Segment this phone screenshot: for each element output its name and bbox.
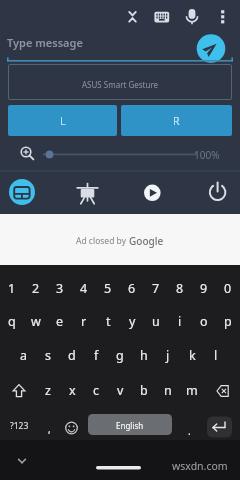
button[interactable]: [180, 5, 204, 29]
button[interactable]: [8, 64, 232, 100]
staticText: 4: [80, 280, 88, 297]
button[interactable]: n: [156, 378, 180, 402]
staticText: ASUS Smart Gesture: [82, 79, 159, 90]
button[interactable]: g: [108, 343, 132, 367]
button[interactable]: 0: [216, 276, 240, 300]
button[interactable]: [8, 144, 44, 162]
button[interactable]: i: [168, 309, 192, 333]
button[interactable]: p: [216, 309, 240, 333]
staticText: 5: [104, 280, 112, 297]
button[interactable]: f: [84, 343, 108, 367]
button[interactable]: [196, 34, 226, 64]
button[interactable]: k: [180, 343, 204, 367]
button[interactable]: w: [24, 309, 48, 333]
button[interactable]: m: [180, 378, 204, 402]
button[interactable]: [72, 179, 103, 206]
staticText: j: [166, 347, 170, 364]
button[interactable]: c: [84, 378, 108, 402]
button[interactable]: 6: [120, 276, 144, 300]
button[interactable]: v: [108, 378, 132, 402]
staticText: n: [164, 382, 172, 399]
button[interactable]: 7: [144, 276, 168, 300]
button[interactable]: 1: [0, 276, 24, 300]
button[interactable]: 2: [24, 276, 48, 300]
button[interactable]: 3: [48, 276, 72, 300]
staticText: ,: [48, 422, 51, 436]
staticText: k: [189, 347, 196, 364]
staticText: y: [129, 313, 136, 330]
button[interactable]: b: [132, 378, 156, 402]
staticText: z: [45, 382, 51, 399]
staticText: s: [45, 347, 51, 364]
staticText: Ad closed by: [76, 235, 129, 247]
button[interactable]: [207, 416, 232, 437]
button[interactable]: L: [8, 105, 117, 136]
staticText: q: [8, 313, 16, 330]
staticText: t: [106, 313, 111, 330]
button[interactable]: 9: [192, 276, 216, 300]
button[interactable]: 5: [96, 276, 120, 300]
button[interactable]: d: [60, 343, 84, 367]
staticText: u: [152, 313, 160, 330]
button[interactable]: a: [12, 343, 36, 367]
staticText: m: [186, 382, 198, 399]
button[interactable]: x: [60, 378, 84, 402]
staticText: p: [224, 313, 232, 330]
button[interactable]: ?123: [4, 415, 34, 437]
button[interactable]: [137, 179, 168, 206]
staticText: h: [140, 347, 148, 364]
button[interactable]: o: [192, 309, 216, 333]
button[interactable]: [88, 414, 172, 435]
button[interactable]: y: [120, 309, 144, 333]
button[interactable]: z: [36, 378, 60, 402]
button[interactable]: h: [132, 343, 156, 367]
button[interactable]: [7, 177, 37, 207]
staticText: c: [93, 382, 100, 399]
button[interactable]: e: [48, 309, 72, 333]
button[interactable]: ,: [40, 418, 58, 440]
staticText: a: [20, 347, 28, 364]
staticText: 6: [128, 280, 136, 297]
button[interactable]: l: [204, 343, 228, 367]
staticText: 2: [32, 280, 40, 297]
staticText: 7: [152, 280, 160, 297]
staticText: g: [116, 347, 124, 364]
staticText: 8: [176, 280, 184, 297]
button[interactable]: u: [144, 309, 168, 333]
button[interactable]: j: [156, 343, 180, 367]
button[interactable]: t: [96, 309, 120, 333]
staticText: w: [31, 313, 41, 330]
staticText: x: [69, 382, 76, 399]
button[interactable]: r: [72, 309, 96, 333]
button[interactable]: 4: [72, 276, 96, 300]
button[interactable]: [120, 5, 144, 29]
button[interactable]: q: [0, 309, 24, 333]
staticText: 1: [8, 280, 16, 297]
staticText: wsxdn.com: [172, 459, 228, 473]
staticText: d: [68, 347, 76, 364]
staticText: r: [81, 313, 87, 330]
staticText: i: [178, 313, 182, 330]
staticText: 3: [56, 280, 64, 297]
staticText: o: [200, 313, 208, 330]
staticText: English: [116, 420, 144, 431]
button[interactable]: [212, 5, 234, 29]
staticText: Type message: [7, 35, 83, 50]
staticText: .: [188, 424, 191, 438]
staticText: R: [173, 114, 180, 128]
staticText: Google: [129, 234, 164, 248]
staticText: e: [56, 313, 64, 330]
button[interactable]: 8: [168, 276, 192, 300]
button[interactable]: [202, 179, 233, 206]
button[interactable]: R: [121, 105, 232, 136]
staticText: L: [60, 114, 66, 128]
button[interactable]: [0, 30, 180, 56]
button[interactable]: s: [36, 343, 60, 367]
staticText: v: [117, 382, 124, 399]
staticText: 100%: [194, 148, 220, 162]
button[interactable]: [150, 5, 174, 29]
staticText: 0: [224, 280, 232, 297]
staticText: ?123: [10, 420, 29, 432]
button[interactable]: .: [180, 420, 198, 442]
staticText: l: [214, 347, 218, 364]
